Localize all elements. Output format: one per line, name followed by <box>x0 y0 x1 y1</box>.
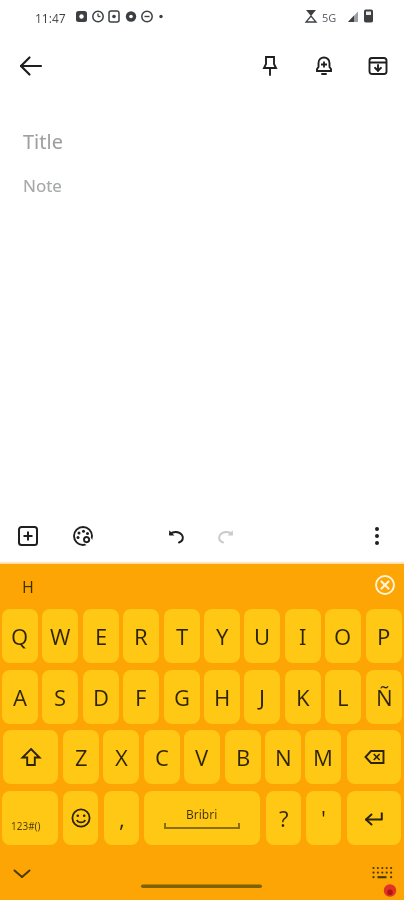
button[interactable]: D <box>83 670 119 724</box>
staticText: T <box>176 621 189 651</box>
button[interactable]: Q <box>2 609 38 663</box>
button[interactable]: C <box>144 730 180 784</box>
button[interactable]: Ñ <box>366 670 402 724</box>
staticText: J <box>259 682 266 712</box>
button[interactable]: , <box>104 791 139 845</box>
button[interactable]: S <box>42 670 78 724</box>
staticText: G <box>174 682 191 712</box>
button[interactable] <box>156 516 196 556</box>
button[interactable]: L <box>325 670 361 724</box>
button[interactable]: B <box>225 730 261 784</box>
staticText: Y <box>216 621 229 651</box>
button[interactable]: Y <box>204 609 240 663</box>
button[interactable] <box>347 791 401 845</box>
staticText: I <box>299 621 307 651</box>
button[interactable]: F <box>123 670 159 724</box>
button[interactable] <box>206 516 246 556</box>
button[interactable] <box>371 571 399 599</box>
button[interactable]: K <box>285 670 321 724</box>
button[interactable]: O <box>325 609 361 663</box>
staticText: E <box>95 621 108 651</box>
staticText: C <box>155 742 169 772</box>
staticText: W <box>50 621 71 651</box>
staticText: L <box>337 682 349 712</box>
button[interactable]: T <box>164 609 200 663</box>
button[interactable]: M <box>305 730 341 784</box>
button[interactable]: Z <box>63 730 99 784</box>
button[interactable] <box>347 730 401 784</box>
staticText: M <box>313 742 333 772</box>
staticText: 5G <box>322 10 337 25</box>
button[interactable] <box>8 516 48 556</box>
staticText: O <box>334 621 352 651</box>
staticText: Note <box>23 174 62 197</box>
staticText: A <box>13 682 28 712</box>
staticText: N <box>275 742 292 772</box>
staticText: R <box>134 621 148 651</box>
button[interactable] <box>63 791 98 845</box>
button[interactable]: E <box>83 609 119 663</box>
staticText: S <box>54 682 67 712</box>
staticText: K <box>296 682 310 712</box>
button[interactable]: V <box>184 730 220 784</box>
button[interactable]: I <box>285 609 321 663</box>
button[interactable]: R <box>123 609 159 663</box>
staticText: D <box>93 682 110 712</box>
staticText: H <box>22 576 34 598</box>
button[interactable]: ? <box>266 791 301 845</box>
staticText: , <box>119 803 125 833</box>
button[interactable]: J <box>244 670 280 724</box>
staticText: ? <box>279 803 289 833</box>
staticText: Title <box>23 128 63 155</box>
button[interactable] <box>11 46 51 86</box>
button[interactable]: U <box>244 609 280 663</box>
button[interactable]: ' <box>306 791 341 845</box>
staticText: Z <box>75 742 88 772</box>
staticText: Q <box>11 621 29 651</box>
button[interactable] <box>63 516 103 556</box>
button[interactable]: P <box>366 609 402 663</box>
button[interactable]: A <box>2 670 38 724</box>
button[interactable]: G <box>164 670 200 724</box>
staticText: B <box>236 742 251 772</box>
button[interactable] <box>304 46 344 86</box>
button[interactable]: W <box>42 609 78 663</box>
staticText: X <box>115 742 128 772</box>
staticText: 11:47 <box>35 10 66 26</box>
button[interactable] <box>250 46 290 86</box>
staticText: Ñ <box>376 682 393 712</box>
button[interactable] <box>358 46 398 86</box>
staticText: U <box>254 621 271 651</box>
staticText: F <box>135 682 147 712</box>
staticText: ' <box>321 803 326 833</box>
button[interactable]: N <box>265 730 301 784</box>
button[interactable] <box>3 730 58 784</box>
staticText: H <box>214 682 231 712</box>
staticText: P <box>377 621 391 651</box>
button[interactable]: X <box>103 730 139 784</box>
button[interactable] <box>357 516 397 556</box>
button[interactable]: 123#() <box>2 791 58 845</box>
staticText: 123#() <box>11 819 41 833</box>
staticText: Bribri <box>186 806 218 822</box>
button[interactable]: H <box>204 670 240 724</box>
button[interactable]: Bribri <box>144 791 260 845</box>
staticText: V <box>195 742 209 772</box>
